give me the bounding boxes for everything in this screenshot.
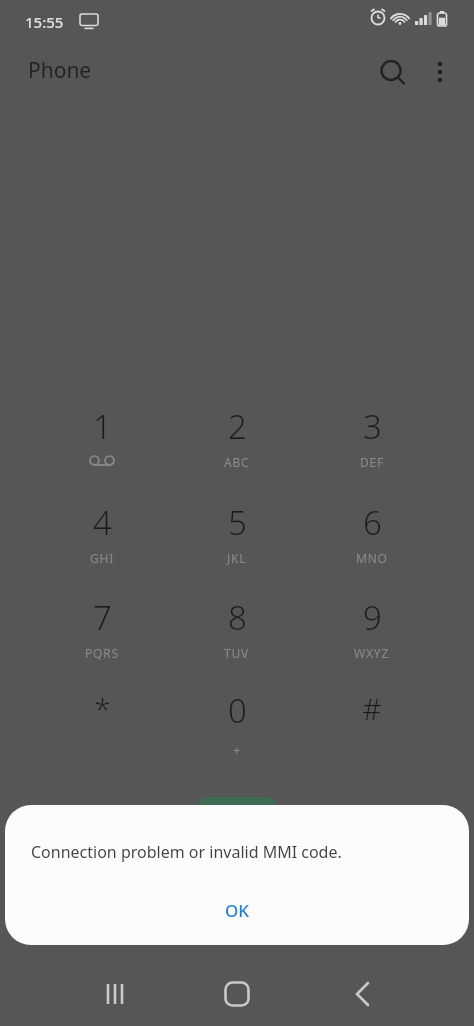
- button[interactable]: 1: [52, 404, 152, 492]
- staticText: 9: [363, 595, 382, 640]
- staticText: DEF: [360, 454, 385, 470]
- staticText: MNO: [356, 550, 388, 566]
- staticText: Connection problem or invalid MMI code.: [31, 841, 342, 863]
- staticText: 2: [228, 404, 247, 449]
- staticText: 4: [93, 500, 112, 545]
- button[interactable]: More options: [418, 50, 462, 94]
- button[interactable]: Search: [370, 50, 414, 94]
- staticText: #: [362, 688, 382, 729]
- button[interactable]: 2: [187, 404, 287, 492]
- staticText: GHI: [90, 550, 115, 566]
- button[interactable]: 6: [322, 500, 422, 588]
- button[interactable]: 4: [52, 500, 152, 588]
- staticText: 1: [93, 404, 112, 449]
- button[interactable]: 3: [322, 404, 422, 492]
- staticText: JKL: [227, 550, 247, 566]
- button[interactable]: OK: [185, 889, 289, 931]
- button[interactable]: 8: [187, 595, 287, 683]
- staticText: 15:55: [25, 12, 64, 32]
- button[interactable]: 0: [187, 688, 287, 776]
- staticText: 6: [363, 500, 382, 545]
- staticText: 8: [228, 595, 247, 640]
- staticText: OK: [225, 899, 250, 922]
- button[interactable]: Recents: [85, 968, 145, 1020]
- button[interactable]: #: [322, 688, 422, 776]
- staticText: PQRS: [85, 645, 119, 661]
- staticText: ABC: [224, 454, 250, 470]
- button[interactable]: 7: [52, 595, 152, 683]
- staticText: +: [233, 741, 242, 759]
- staticText: 7: [93, 595, 112, 640]
- button[interactable]: Call: [197, 797, 277, 817]
- staticText: WXYZ: [354, 645, 390, 661]
- staticText: TUV: [224, 645, 250, 661]
- staticText: 0: [228, 688, 247, 733]
- staticText: 3: [363, 404, 382, 449]
- staticText: 5: [228, 500, 247, 545]
- staticText: *: [94, 688, 111, 729]
- button[interactable]: Back: [330, 968, 390, 1020]
- button[interactable]: *: [52, 688, 152, 776]
- button[interactable]: Home: [207, 968, 267, 1020]
- button[interactable]: 5: [187, 500, 287, 588]
- staticText: Phone: [28, 56, 92, 85]
- button[interactable]: 9: [322, 595, 422, 683]
